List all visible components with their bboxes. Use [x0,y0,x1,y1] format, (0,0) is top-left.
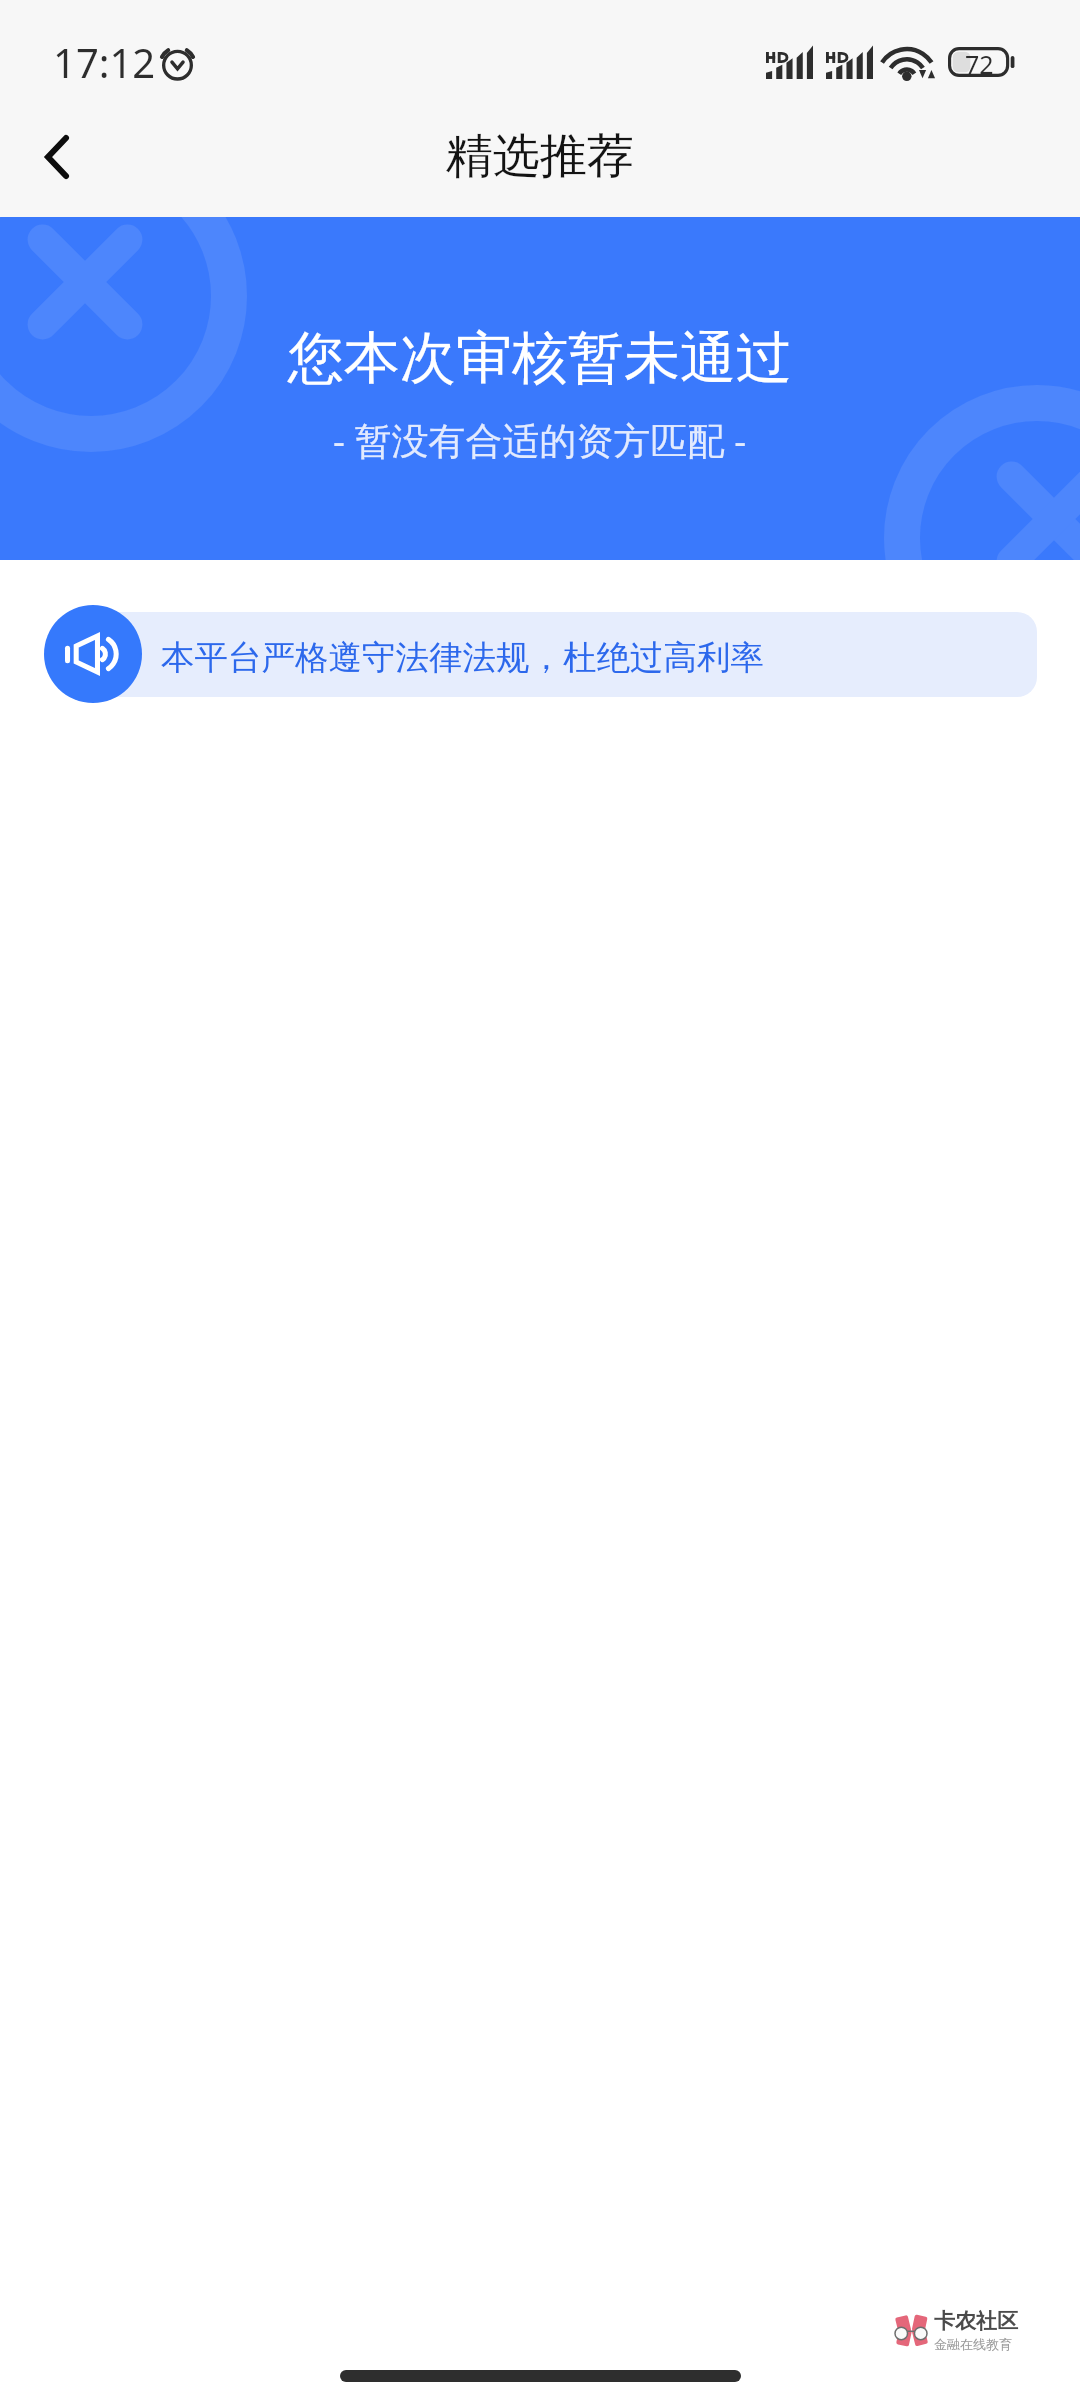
staticText: 72 [965,47,994,77]
staticText: 精选推荐 [446,127,634,186]
other: Announcement [44,605,142,703]
staticText: 本平台严格遵守法律法规，杜绝过高利率 [161,637,764,679]
staticText: 金融在线教育 [934,2336,1012,2352]
staticText: 17:12 [53,35,156,89]
staticText: - 暂没有合适的资方匹配 - [333,414,747,465]
button[interactable]: Announcement [44,599,1037,709]
staticText: 卡农社区 [934,2308,1018,2334]
staticText: 您本次审核暂未通过 [288,323,792,394]
button[interactable]: Back [0,108,110,217]
